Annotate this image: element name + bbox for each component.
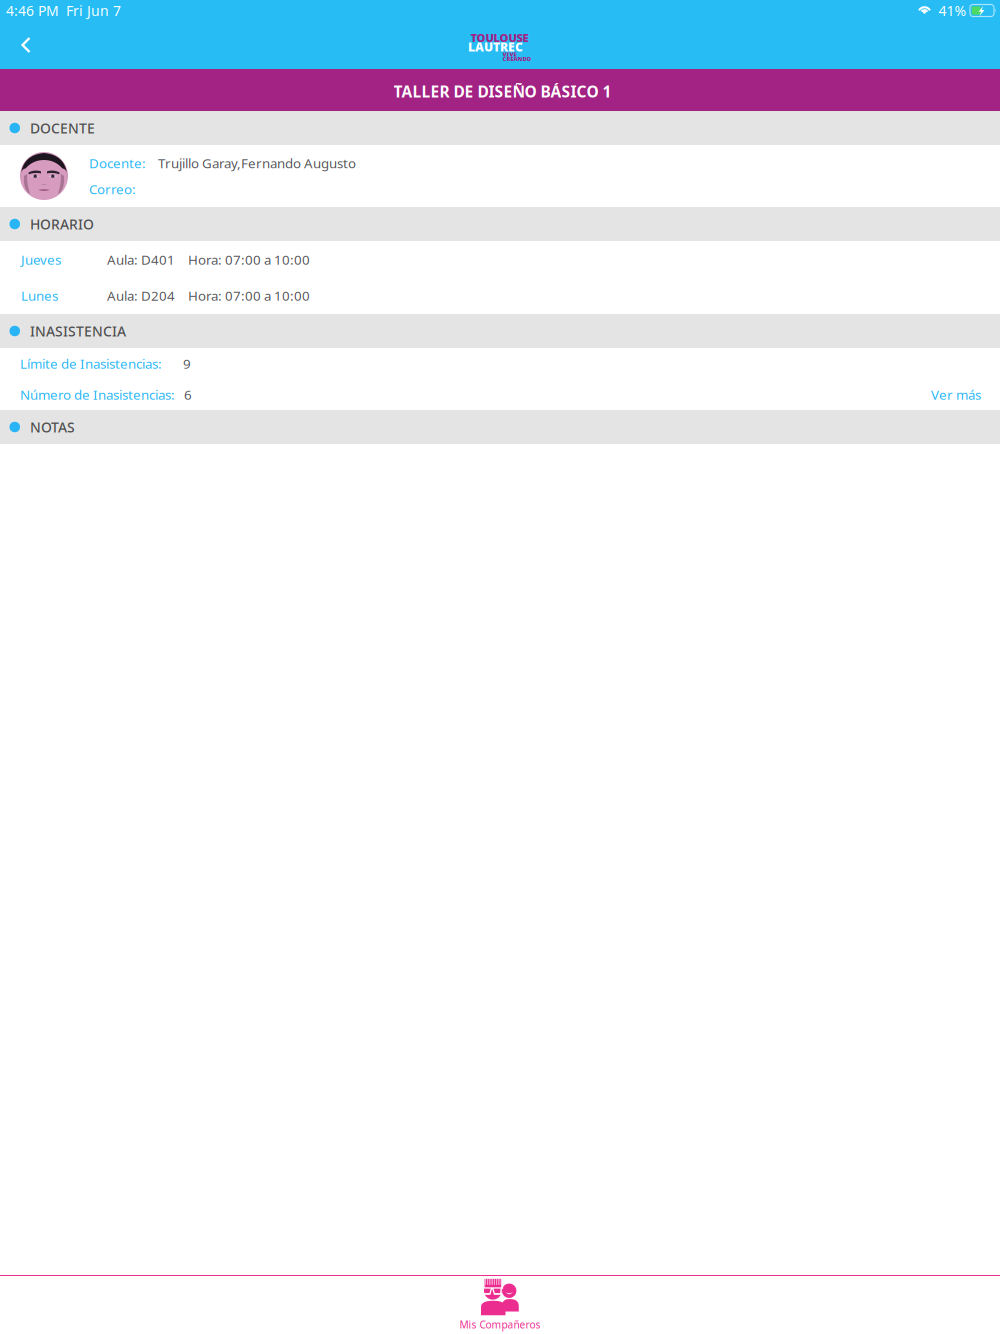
staticText: 6 (184, 385, 192, 404)
staticText: Límite de Inasistencias: (20, 354, 162, 373)
staticText: Correo: (89, 180, 136, 198)
staticText: NOTAS (30, 417, 75, 436)
staticText: Docente: (89, 154, 146, 172)
staticText: TALLER DE DISEÑO BÁSICO 1 (393, 81, 611, 102)
staticText: Hora: 07:00 a 10:00 (188, 250, 310, 269)
button[interactable]: Mis Compañeros (0, 1276, 1000, 1334)
staticText: Aula: D401 (107, 250, 175, 269)
staticText: Ver más (931, 385, 981, 404)
staticText: VIVE (503, 50, 517, 58)
staticText: HORARIO (30, 214, 94, 233)
button[interactable]: Ver más (931, 378, 1000, 411)
staticText: LAUTREC (468, 38, 523, 55)
staticText: Fri Jun 7 (66, 1, 121, 20)
button[interactable]: Back (6, 24, 46, 66)
staticText: Hora: 07:00 a 10:00 (188, 286, 310, 305)
staticText: 9 (183, 354, 191, 373)
staticText: DOCENTE (30, 118, 95, 137)
staticText: Aula: D204 (107, 286, 175, 305)
staticText: Trujillo Garay,Fernando Augusto (158, 154, 356, 172)
staticText: TOULOUSE (470, 30, 528, 45)
staticText: Lunes (21, 286, 58, 305)
staticText: 4:46 PM (6, 1, 59, 20)
staticText: INASISTENCIA (30, 321, 126, 340)
staticText: Número de Inasistencias: (20, 385, 175, 404)
staticText: 41% (938, 1, 966, 20)
staticText: Mis Compañeros (459, 1318, 540, 1331)
staticText: Jueves (21, 250, 61, 269)
staticText: CREANDO (503, 55, 532, 63)
